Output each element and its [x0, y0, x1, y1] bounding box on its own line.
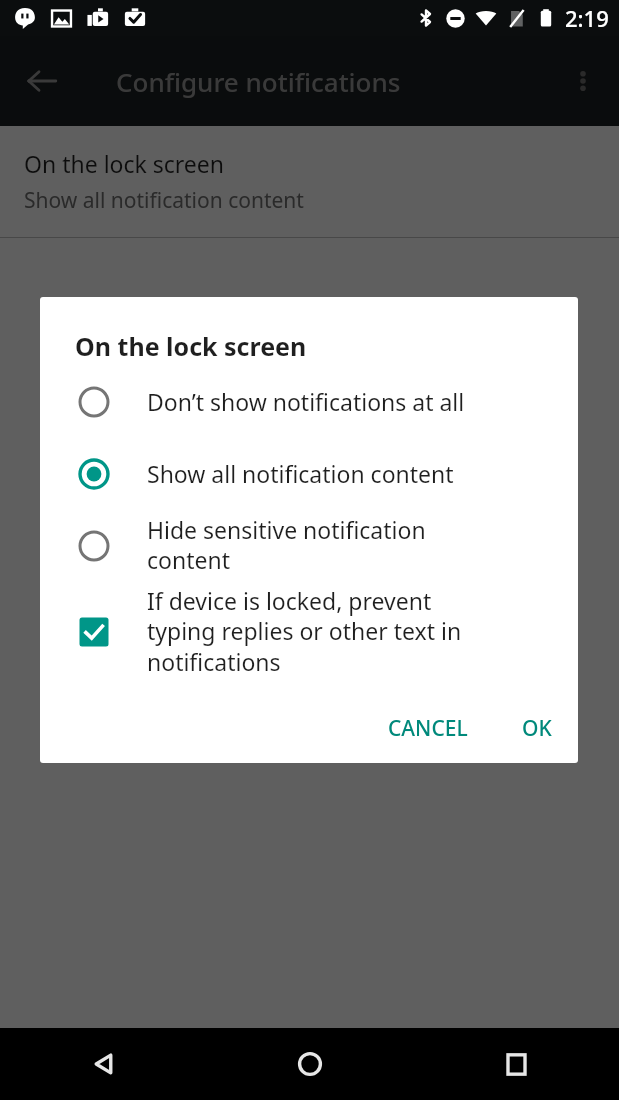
button[interactable]: Back	[18, 57, 66, 105]
button[interactable]: OK	[506, 702, 568, 755]
staticText: CANCEL	[388, 714, 468, 743]
staticText: Show all notification content	[147, 458, 547, 489]
staticText: Hide sensitive notification content	[147, 514, 477, 576]
button[interactable]: If device is locked, prevent typing repl…	[40, 581, 578, 681]
staticText: If device is locked, prevent typing repl…	[147, 585, 497, 678]
staticText: On the lock screen	[24, 148, 225, 179]
staticText: Configure notifications	[116, 64, 401, 99]
button[interactable]: Recent apps	[413, 1028, 619, 1100]
button[interactable]: Home	[207, 1028, 413, 1100]
button[interactable]: More options	[561, 59, 605, 103]
button[interactable]: CANCEL	[372, 702, 484, 755]
button[interactable]: Back	[0, 1028, 207, 1100]
staticText: Don’t show notifications at all	[147, 386, 547, 417]
staticText: OK	[522, 714, 552, 743]
button[interactable]: Hide sensitive notification content	[40, 509, 578, 581]
staticText: 2:19	[565, 3, 609, 33]
staticText: Show all notification content	[24, 186, 304, 215]
button[interactable]: Don’t show notifications at all	[40, 375, 578, 427]
button[interactable]: Show all notification content	[40, 447, 578, 499]
staticText: On the lock screen	[75, 329, 307, 363]
